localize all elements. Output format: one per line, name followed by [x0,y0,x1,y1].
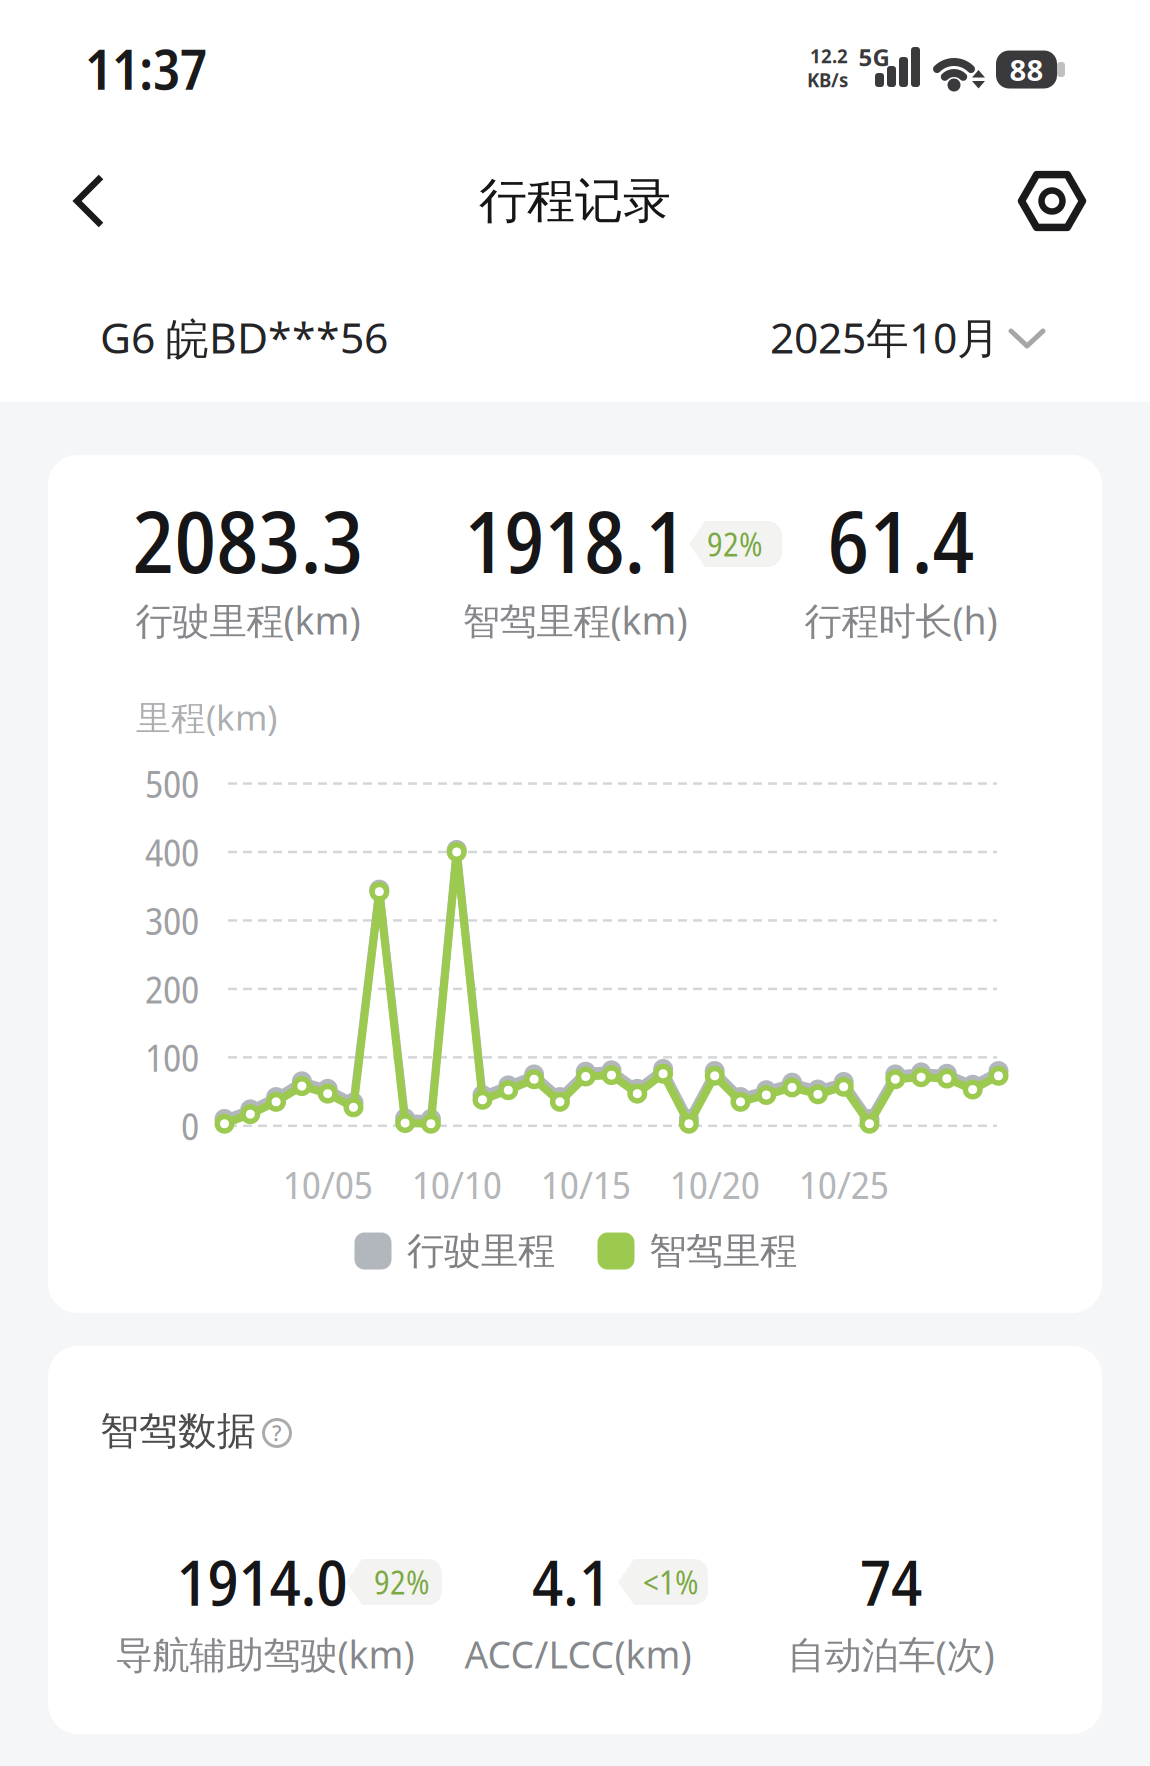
staticText: 1918.1 [464,482,685,598]
staticText: 10/05 [283,1158,373,1210]
staticText: 5G [858,41,889,73]
button[interactable]: Back [49,161,129,241]
staticText: 行程记录 [479,171,671,230]
staticText: 92% [374,1560,430,1604]
staticText: 2025年10月 [770,309,1000,365]
staticText: 2083.3 [132,482,363,598]
staticText: 智驾里程(km) [462,595,687,645]
button[interactable]: 2025年10月 [740,301,1070,373]
staticText: 智驾数据 [100,1407,256,1455]
staticText: 行驶里程 [407,1228,555,1274]
staticText: 11:37 [85,30,207,106]
staticText: 88 [1009,50,1043,89]
staticText: 12.2 [810,44,848,68]
staticText: G6 皖BD***56 [100,309,388,365]
staticText: 500 [145,758,199,809]
button[interactable]: 智驾数据说明 [245,1401,309,1465]
staticText: 92% [707,522,763,566]
staticText: KB/s [807,68,848,92]
staticText: 行程时长(h) [804,595,997,645]
staticText: 300 [145,895,199,946]
staticText: 74 [860,1537,922,1625]
staticText: 里程(km) [136,694,277,740]
staticText: 1914.0 [176,1537,347,1625]
staticText: 自动泊车(次) [787,1629,994,1679]
staticText: 400 [145,827,199,877]
staticText: 智驾里程 [649,1228,797,1274]
staticText: 61.4 [827,482,974,598]
staticText: 100 [145,1032,199,1083]
staticText: 200 [145,963,199,1014]
button[interactable]: Settings [1007,156,1097,246]
staticText: 行驶里程(km) [135,595,360,645]
staticText: 0 [181,1100,199,1151]
staticText: ACC/LCC(km) [464,1629,691,1679]
staticText: 10/10 [412,1158,502,1210]
staticText: <1% [643,1560,699,1604]
staticText: 导航辅助驾驶(km) [115,1629,414,1679]
staticText: ? [272,1419,282,1447]
staticText: 4.1 [532,1537,610,1625]
staticText: 10/20 [670,1158,760,1210]
staticText: 10/15 [541,1158,631,1210]
staticText: 10/25 [799,1158,889,1210]
